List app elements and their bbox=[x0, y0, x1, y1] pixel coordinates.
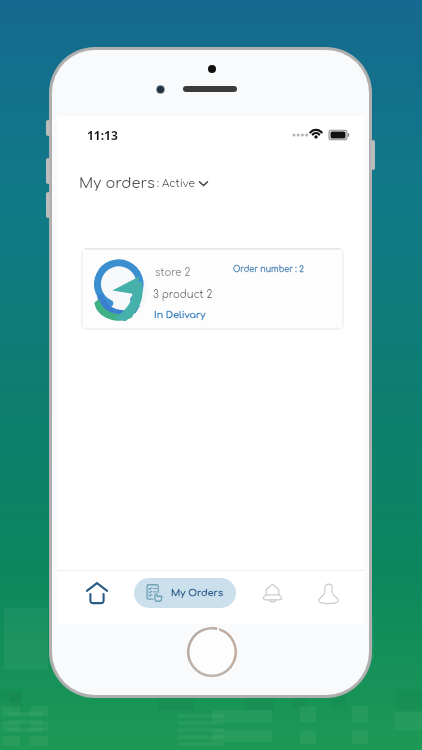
button[interactable]: store 2 bbox=[81, 248, 344, 330]
button[interactable]: Notifications bbox=[250, 571, 294, 615]
button[interactable]: Profile bbox=[306, 571, 350, 615]
staticText: 3 product 2 bbox=[153, 289, 213, 300]
staticText: Order number : 2 bbox=[233, 265, 304, 274]
staticText: In Delivary bbox=[154, 310, 206, 321]
staticText: 11:13 bbox=[87, 127, 118, 143]
staticText: My orders bbox=[79, 175, 155, 191]
staticText: store 2 bbox=[155, 267, 191, 278]
button[interactable]: My Orders bbox=[134, 578, 236, 608]
staticText: My Orders bbox=[171, 588, 224, 599]
button[interactable]: Home bbox=[75, 571, 119, 615]
staticText: : Active bbox=[157, 178, 195, 190]
button[interactable]: My orders bbox=[75, 171, 212, 195]
